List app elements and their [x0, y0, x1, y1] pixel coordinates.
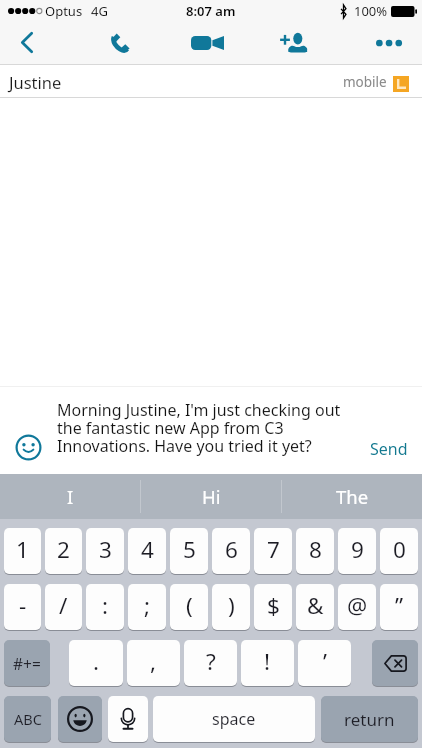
button[interactable]: space [153, 696, 315, 742]
button[interactable]: Send [370, 438, 408, 460]
button[interactable]: Video call [185, 22, 229, 63]
staticText: 2 [57, 534, 70, 565]
button[interactable]: . [69, 640, 123, 686]
button[interactable]: More options [366, 22, 411, 63]
staticText: . [93, 646, 100, 677]
staticText: ” [395, 590, 404, 621]
staticText: 5 [183, 534, 196, 565]
button[interactable]: : [86, 584, 124, 630]
button[interactable]: Add contact [272, 22, 316, 63]
button[interactable]: Justine [0, 65, 422, 98]
button[interactable]: - [4, 584, 41, 630]
button[interactable]: Hi [141, 474, 281, 519]
button[interactable]: / [45, 584, 82, 630]
button[interactable]: Call [98, 22, 142, 63]
button[interactable]: ) [212, 584, 250, 630]
button[interactable]: 6 [212, 528, 250, 574]
button[interactable]: ? [184, 640, 237, 686]
staticText: $ [267, 590, 280, 621]
button[interactable]: return [321, 696, 418, 742]
staticText: 9 [351, 534, 364, 565]
staticText: & [307, 590, 324, 621]
button[interactable] [372, 640, 418, 686]
staticText: 0 [393, 534, 406, 565]
staticText: ’ [323, 646, 327, 677]
staticText: ( [186, 590, 193, 621]
button[interactable]: 0 [380, 528, 418, 574]
button[interactable]: ” [380, 584, 418, 630]
staticText: Hi [202, 484, 221, 509]
button[interactable]: ABC [4, 696, 51, 742]
button[interactable]: , [127, 640, 180, 686]
button[interactable] [108, 696, 148, 742]
staticText: ! [264, 646, 271, 677]
button[interactable]: @ [338, 584, 376, 630]
staticText: Justine [9, 71, 62, 93]
staticText: space [212, 708, 256, 730]
staticText: @ [347, 590, 368, 621]
button[interactable]: Back [6, 22, 48, 63]
staticText: ; [144, 590, 151, 621]
button[interactable]: ’ [298, 640, 351, 686]
button[interactable]: Emoji [15, 434, 42, 461]
staticText: 3 [99, 534, 112, 565]
button[interactable]: 5 [170, 528, 208, 574]
button[interactable]: & [296, 584, 334, 630]
staticText: return [344, 708, 395, 731]
staticText: 4 [141, 534, 154, 565]
staticText: Optus [45, 2, 83, 20]
staticText: 100% [354, 2, 388, 20]
staticText: #+= [13, 653, 41, 674]
button[interactable]: 7 [254, 528, 292, 574]
staticText: 8:07 am [186, 2, 236, 20]
button[interactable]: 2 [45, 528, 82, 574]
staticText: 7 [267, 534, 280, 565]
button[interactable]: The [282, 474, 422, 519]
button[interactable]: 8 [296, 528, 334, 574]
staticText: : [102, 590, 109, 621]
button[interactable]: ( [170, 584, 208, 630]
staticText: ? [206, 646, 216, 677]
button[interactable]: $ [254, 584, 292, 630]
staticText: Morning Justine, I'm just checking out t… [57, 399, 341, 457]
staticText: 8 [309, 534, 322, 565]
staticText: - [19, 590, 27, 621]
staticText: Send [370, 438, 408, 460]
staticText: The [336, 484, 369, 509]
staticText: ABC [14, 709, 42, 729]
staticText: , [150, 646, 157, 677]
staticText: I [67, 484, 74, 509]
staticText: 4G [91, 2, 108, 20]
button[interactable]: 9 [338, 528, 376, 574]
button[interactable]: 3 [86, 528, 124, 574]
button[interactable]: ! [241, 640, 294, 686]
button[interactable]: 1 [4, 528, 41, 574]
button[interactable]: 4 [128, 528, 166, 574]
button[interactable]: ; [128, 584, 166, 630]
staticText: ) [228, 590, 235, 621]
button[interactable]: #+= [4, 640, 50, 686]
button[interactable]: I [0, 474, 140, 519]
button[interactable] [58, 696, 102, 742]
staticText: 1 [16, 534, 29, 565]
staticText: 6 [225, 534, 238, 565]
staticText: / [59, 590, 68, 621]
staticText: mobile [343, 73, 387, 91]
